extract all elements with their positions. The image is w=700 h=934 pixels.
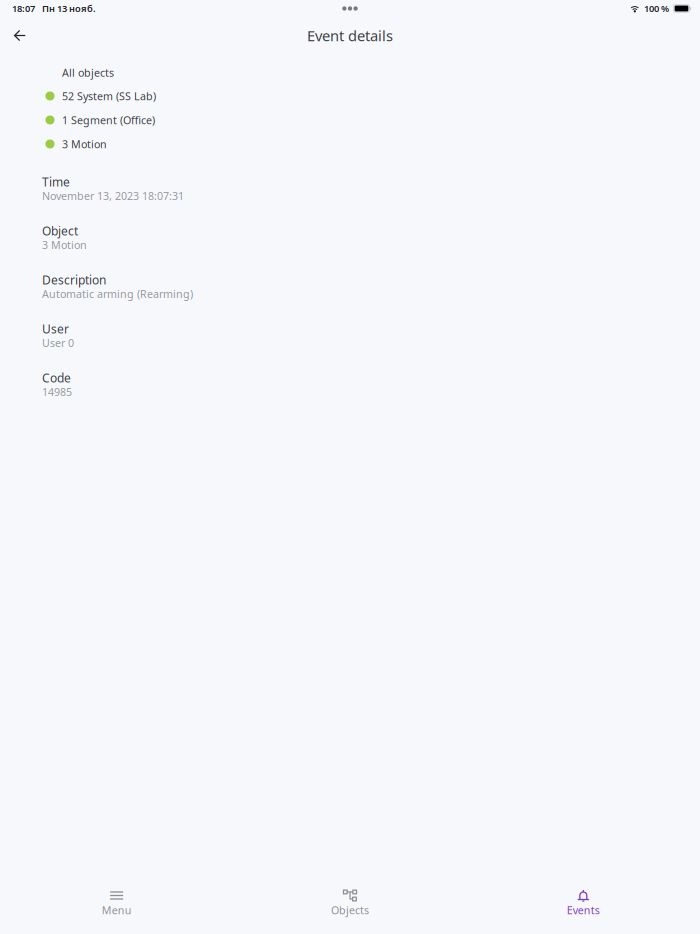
staticText: Menu <box>102 903 132 917</box>
staticText: Objects <box>331 903 369 917</box>
button[interactable]: Back <box>0 17 39 54</box>
staticText: Event details <box>307 26 393 45</box>
staticText: Automatic arming (Rearming) <box>42 287 193 301</box>
staticText: Events <box>567 903 600 917</box>
staticText: Description <box>42 272 106 288</box>
staticText: Code <box>42 370 71 386</box>
staticText: November 13, 2023 18:07:31 <box>42 189 184 203</box>
staticText: All objects <box>62 65 114 80</box>
button[interactable]: Objects <box>233 880 467 934</box>
staticText: Object <box>42 223 78 239</box>
staticText: 1 Segment (Office) <box>62 113 155 127</box>
staticText: 100 % <box>644 2 669 15</box>
staticText: 14985 <box>42 385 72 399</box>
staticText: 52 System (SS Lab) <box>62 89 156 103</box>
staticText: 3 Motion <box>62 137 107 151</box>
staticText: 18:07 <box>12 2 35 15</box>
staticText: 3 Motion <box>42 238 87 252</box>
staticText: User 0 <box>42 336 74 350</box>
staticText: Пн 13 нояб. <box>42 2 96 15</box>
button[interactable]: Menu <box>0 880 233 934</box>
staticText: Time <box>42 174 70 190</box>
button[interactable]: Events <box>467 880 700 934</box>
staticText: User <box>42 321 69 337</box>
